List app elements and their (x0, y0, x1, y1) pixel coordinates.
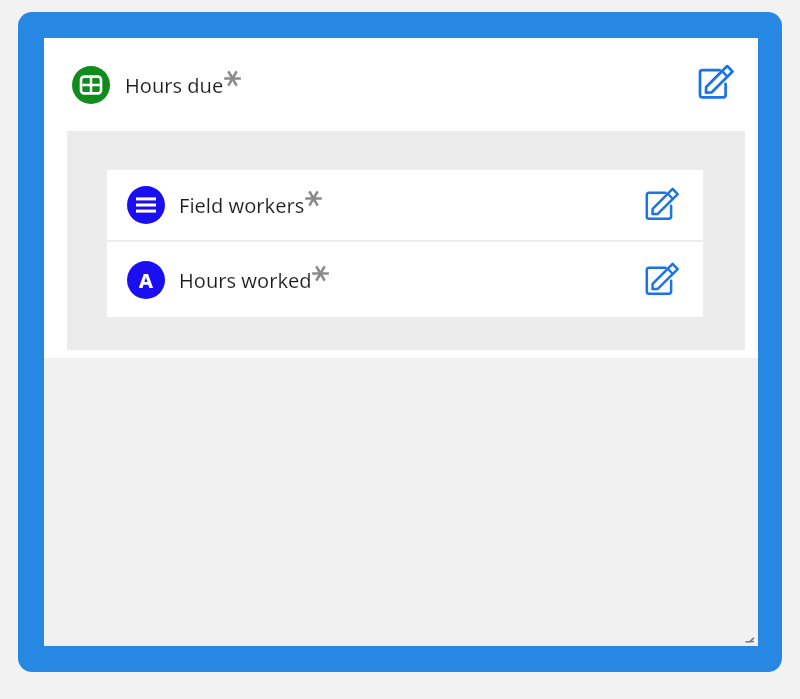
button[interactable]: Edit Field workers (639, 182, 685, 228)
button[interactable]: Field workers (107, 170, 703, 240)
button[interactable]: Hours due (72, 66, 241, 104)
button[interactable]: Edit Hours due (692, 59, 740, 107)
staticText: Hours due (125, 72, 224, 99)
button[interactable]: Edit Hours worked (639, 257, 685, 303)
staticText: Hours worked (179, 267, 312, 294)
staticText: Field workers (179, 192, 305, 219)
button[interactable]: A (107, 242, 703, 317)
staticText: A (139, 267, 153, 294)
